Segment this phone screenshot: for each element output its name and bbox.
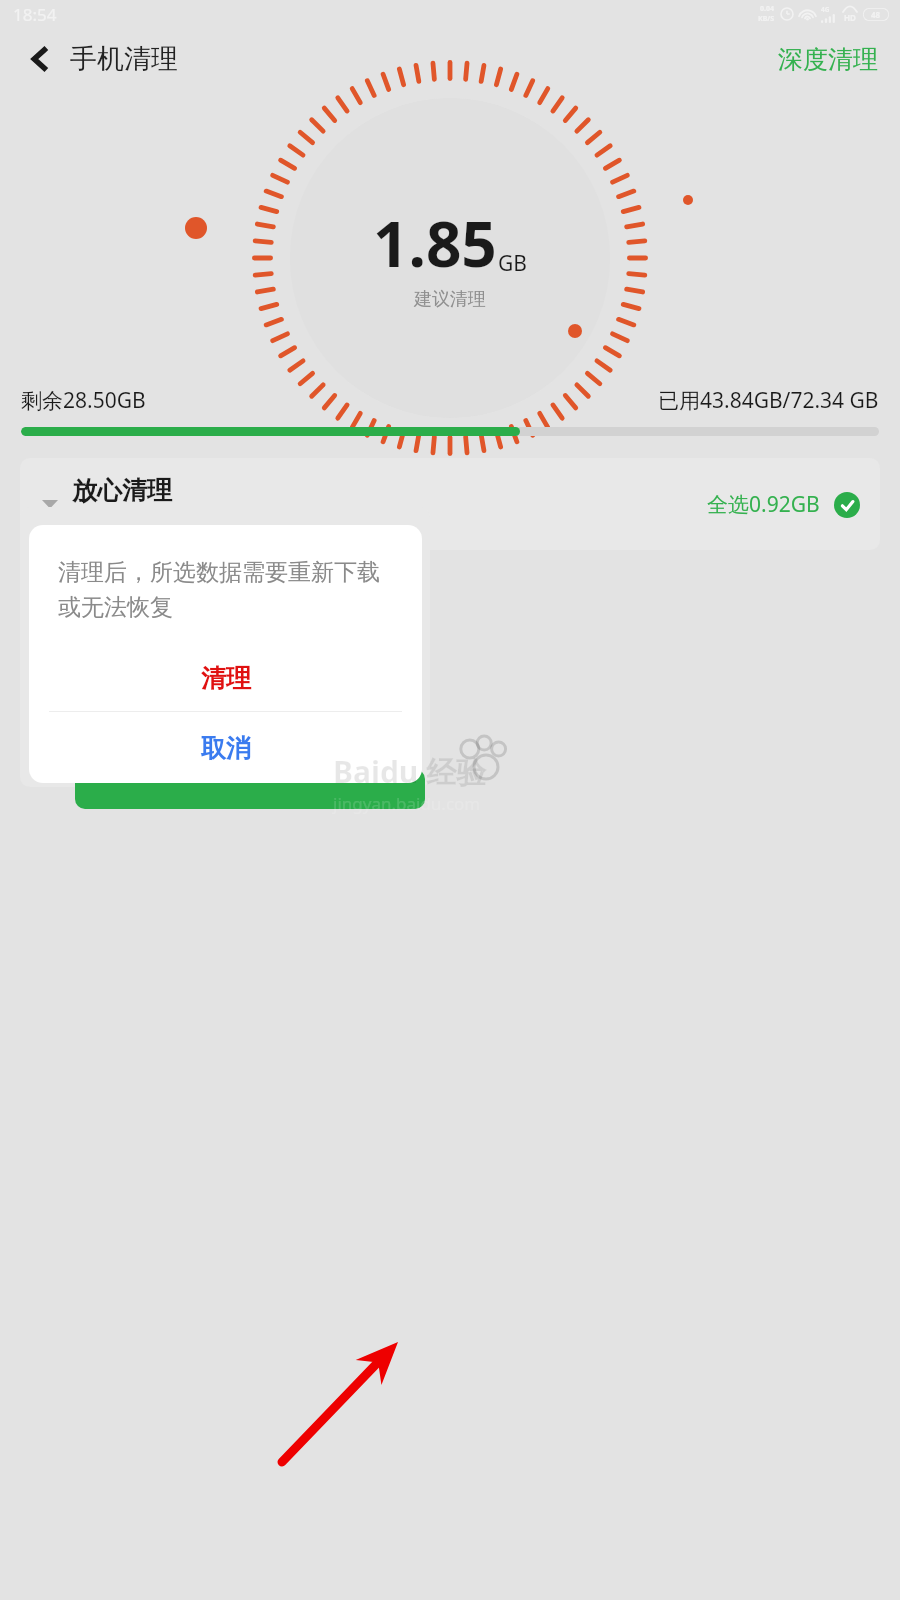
staticText: 18:54 (13, 3, 57, 26)
button[interactable]: Back (18, 37, 62, 81)
staticText: KB/S (758, 14, 775, 24)
staticText: 清理后，所选数据需要重新下载或无法恢复 (58, 558, 397, 622)
staticText: 1.85 (373, 201, 497, 285)
button[interactable]: 深度清理 (772, 38, 884, 81)
staticText: 48 (871, 9, 881, 20)
staticText: 建议清理 (414, 288, 486, 311)
staticText: 手机清理 (70, 42, 178, 76)
staticText: 剩余28.50GB (21, 386, 146, 415)
button[interactable]: 放心清理 (20, 458, 880, 550)
staticText: 清理后不会影响使用 (72, 510, 234, 533)
staticText: 放心清理 (72, 475, 172, 506)
staticText: 已用43.84GB/72.34 GB (658, 386, 879, 415)
button[interactable] (75, 769, 425, 809)
staticText: Baidu 经验 (333, 751, 487, 792)
staticText: jingyan.baidu.com (333, 792, 481, 815)
button[interactable]: 取消 (29, 721, 422, 776)
staticText: 取消 (201, 733, 251, 764)
button[interactable]: 清理 (29, 652, 422, 705)
button[interactable]: Selected (834, 492, 860, 518)
staticText: 4G (821, 5, 830, 14)
staticText: 0.04 (760, 4, 774, 14)
staticText: 全选0.92GB (707, 490, 820, 519)
staticText: 深度清理 (778, 44, 878, 75)
staticText: GB (498, 249, 527, 278)
staticText: 清理 (201, 663, 251, 694)
staticText: HD (844, 12, 856, 23)
